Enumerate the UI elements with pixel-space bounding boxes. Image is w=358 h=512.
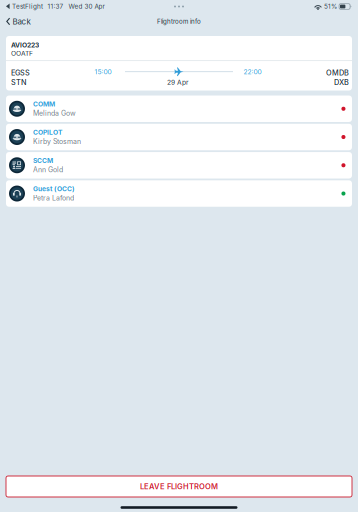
staticText: Back <box>12 17 30 26</box>
staticText: COMM <box>33 100 55 108</box>
staticText: 51% <box>324 3 337 10</box>
staticText: 22:00 <box>243 68 261 76</box>
staticText: Kirby Stosman <box>33 137 81 146</box>
staticText: Wed 30 Apr <box>68 3 104 10</box>
staticText: OMDB <box>326 68 349 77</box>
staticText: Melinda Gow <box>33 109 76 117</box>
staticText: 11:37 <box>47 3 63 10</box>
button[interactable]: Back <box>2 14 34 29</box>
staticText: 15:00 <box>94 68 111 76</box>
staticText: STN <box>11 78 27 87</box>
staticText: LEAVE FLIGHTROOM <box>140 482 218 491</box>
staticText: Petra Lafond <box>33 194 74 202</box>
staticText: COPILOT <box>33 128 62 136</box>
staticText: AVIO223 <box>11 41 39 49</box>
staticText: TestFlight <box>12 3 43 10</box>
button[interactable]: SCCM <box>6 152 352 178</box>
button[interactable]: LEAVE FLIGHTROOM <box>6 476 352 497</box>
button[interactable]: COPILOT <box>6 124 352 150</box>
staticText: DXB <box>334 78 349 87</box>
staticText: Flightroom info <box>157 18 201 25</box>
staticText: 29 Apr <box>167 78 189 86</box>
staticText: Ann Gold <box>33 166 63 174</box>
staticText: Guest (OCC) <box>33 185 75 193</box>
button[interactable]: Guest (OCC) <box>6 180 352 207</box>
button[interactable]: COMM <box>6 95 352 122</box>
staticText: SCCM <box>33 156 53 165</box>
staticText: OOATF <box>11 49 33 57</box>
staticText: EGSS <box>11 68 30 77</box>
